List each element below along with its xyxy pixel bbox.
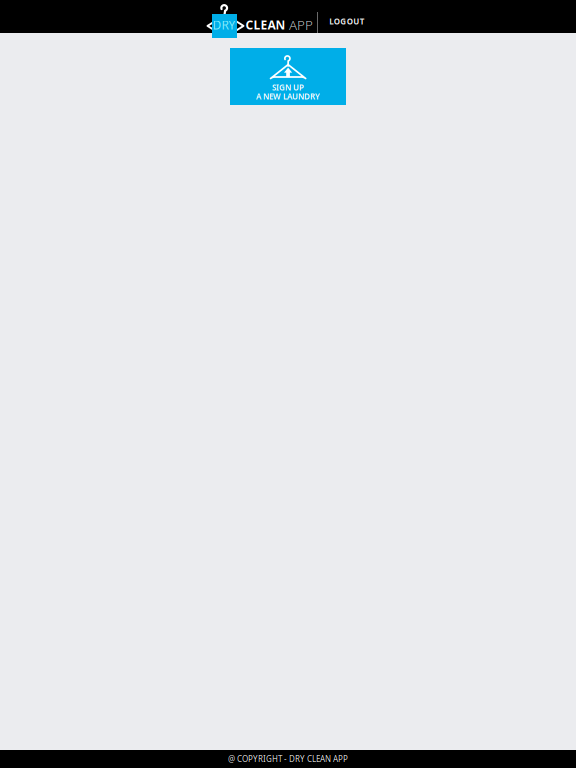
staticText: SIGN UP	[272, 82, 304, 93]
button[interactable]: Dry Clean App home	[203, 0, 314, 33]
staticText: DRY	[212, 17, 235, 33]
staticText: CLEAN	[245, 17, 285, 33]
button[interactable]: Sign up a new laundry	[230, 48, 346, 105]
staticText: APP	[289, 16, 313, 34]
button[interactable]: LOGOUT	[316, 5, 378, 38]
staticText: A NEW LAUNDRY	[256, 91, 320, 102]
staticText: LOGOUT	[329, 16, 365, 27]
staticText: @ COPYRIGHT - DRY CLEAN APP	[228, 754, 348, 764]
